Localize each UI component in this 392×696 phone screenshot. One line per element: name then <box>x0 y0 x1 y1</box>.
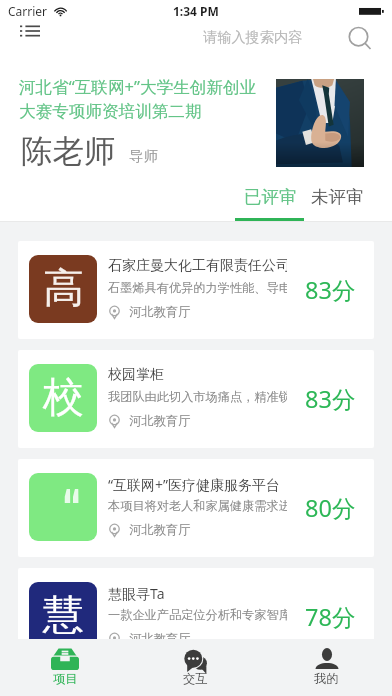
staticText: 石家庄曼大化工有限责任公司 <box>108 257 287 275</box>
staticText: 校园掌柜 <box>108 366 164 384</box>
staticText: 慧 <box>43 590 84 642</box>
button[interactable]: 已评审 <box>235 180 305 221</box>
staticText: 交互 <box>183 671 208 686</box>
staticText: 项目 <box>53 671 78 686</box>
button[interactable]: 慧 <box>18 568 374 666</box>
button[interactable]: 交互 <box>130 639 261 696</box>
staticText: “互联网+”医疗健康服务平台 <box>108 475 281 494</box>
staticText: 83分 <box>305 274 356 306</box>
staticText: 导师 <box>129 147 159 165</box>
staticText: 78分 <box>305 601 356 633</box>
staticText: 我的 <box>314 671 339 686</box>
staticText: 请输入搜索内容 <box>203 28 303 46</box>
staticText: 80分 <box>305 492 356 524</box>
staticText: 河北教育厅 <box>129 522 191 537</box>
button[interactable]: 请输入搜索内容 <box>203 28 303 46</box>
staticText: Carrier <box>8 3 48 19</box>
staticText: 一款企业产品定位分析和专家智库 <box>108 607 287 622</box>
staticText: 校 <box>43 372 84 424</box>
button[interactable]: 校 <box>18 350 374 448</box>
staticText: 1:34 PM <box>173 3 219 19</box>
staticText: 慧眼寻Ta <box>108 584 165 603</box>
button[interactable]: 未评审 <box>306 180 368 221</box>
staticText: 河北教育厅 <box>129 304 191 319</box>
staticText: 83分 <box>305 383 356 415</box>
staticText: 河北教育厅 <box>129 631 191 646</box>
staticText: 高 <box>43 263 84 315</box>
staticText: 已评审 <box>244 186 297 208</box>
button[interactable]: 我的 <box>261 639 392 696</box>
button[interactable]: 高 <box>18 241 374 339</box>
button[interactable]: 项目 <box>0 639 130 696</box>
staticText: 大赛专项师资培训第二期 <box>19 101 202 122</box>
staticText: 石墨烯具有优异的力学性能、导电 <box>108 280 287 295</box>
staticText: 未评审 <box>311 186 364 208</box>
button[interactable]: Menu <box>13 14 47 48</box>
staticText: 本项目将对老人和家属健康需求进 <box>108 498 287 513</box>
button[interactable]: Search <box>345 24 375 54</box>
staticText: 陈老师 <box>21 132 116 172</box>
staticText: 我团队由此切入市场痛点，精准锁 <box>108 389 287 404</box>
button[interactable]: “互联网+”医疗健康服务平台 <box>18 459 374 557</box>
staticText: 河北教育厅 <box>129 413 191 428</box>
staticText: 河北省“互联网+”大学生创新创业 <box>19 75 257 98</box>
